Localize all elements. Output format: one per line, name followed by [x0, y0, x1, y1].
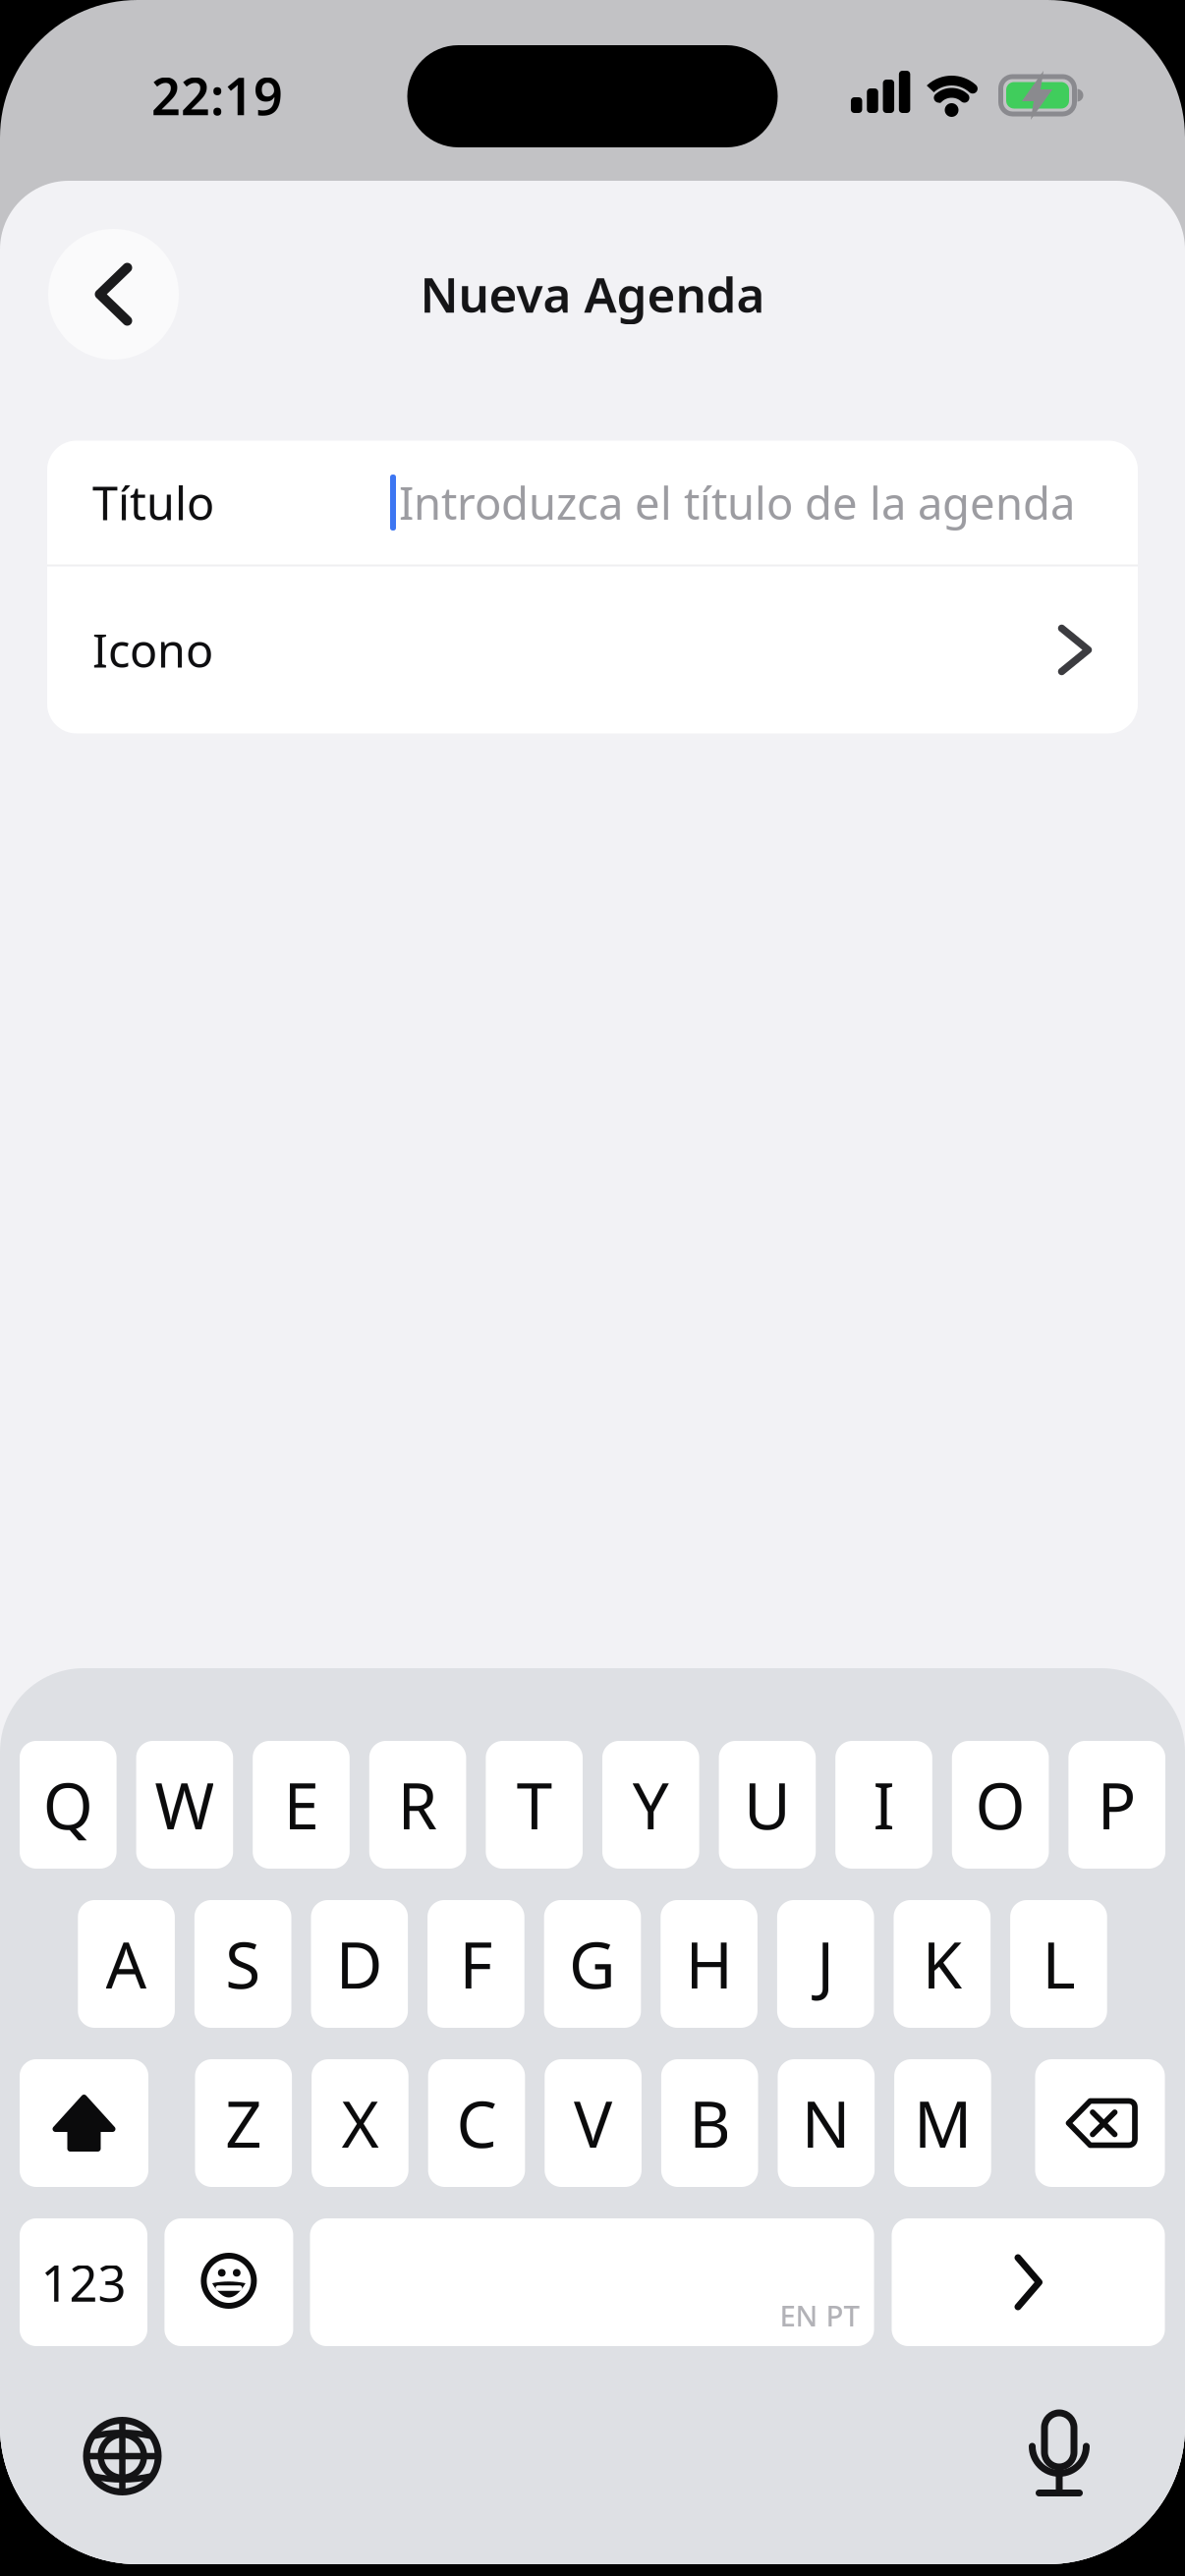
staticText: E — [283, 1762, 319, 1847]
button[interactable]: X — [312, 2059, 408, 2187]
staticText: U — [744, 1762, 791, 1847]
button[interactable]: Return — [892, 2218, 1165, 2346]
button[interactable]: Shift — [20, 2059, 148, 2187]
staticText: D — [336, 1921, 383, 2007]
button[interactable]: D — [311, 1900, 408, 2028]
button[interactable]: A — [78, 1900, 175, 2028]
staticText: Título — [92, 472, 214, 533]
staticText: G — [569, 1921, 616, 2007]
staticText: Y — [633, 1762, 669, 1847]
staticText: O — [975, 1762, 1025, 1847]
button[interactable]: Q — [20, 1741, 117, 1869]
button[interactable]: T — [486, 1741, 583, 1869]
button[interactable]: L — [1010, 1900, 1107, 2028]
button[interactable]: Numbers — [20, 2218, 147, 2346]
button[interactable]: Dictate — [1018, 2410, 1106, 2502]
staticText: M — [914, 2080, 972, 2166]
staticText: 22:19 — [151, 61, 283, 129]
staticText: C — [456, 2080, 497, 2166]
button[interactable]: Icono — [47, 566, 1138, 733]
staticText: A — [106, 1921, 147, 2007]
staticText: H — [685, 1921, 733, 2007]
staticText: N — [802, 2080, 851, 2166]
staticText: R — [398, 1762, 438, 1847]
button[interactable]: W — [136, 1741, 233, 1869]
button[interactable]: S — [194, 1900, 291, 2028]
button[interactable]: Z — [195, 2059, 292, 2187]
staticText: V — [574, 2080, 612, 2166]
button[interactable]: M — [894, 2059, 991, 2187]
button[interactable]: F — [428, 1900, 524, 2028]
staticText: EN PT — [780, 2296, 859, 2334]
staticText: L — [1042, 1921, 1075, 2007]
button[interactable]: Delete — [1035, 2059, 1165, 2187]
button[interactable]: J — [777, 1900, 874, 2028]
staticText: I — [873, 1762, 895, 1847]
staticText: Z — [225, 2080, 262, 2166]
staticText: 123 — [41, 2249, 126, 2315]
button[interactable]: H — [661, 1900, 757, 2028]
staticText: Icono — [92, 619, 213, 680]
button[interactable]: B — [661, 2059, 758, 2187]
button[interactable]: I — [835, 1741, 932, 1869]
staticText: Introduzca el título de la agenda — [399, 473, 1075, 532]
staticText: F — [459, 1921, 493, 2007]
staticText: Nueva Agenda — [420, 262, 765, 326]
button[interactable]: Back — [48, 229, 179, 360]
button[interactable]: Next keyboard — [79, 2413, 166, 2499]
staticText: W — [155, 1762, 215, 1847]
button[interactable]: G — [544, 1900, 641, 2028]
button[interactable]: N — [778, 2059, 875, 2187]
staticText: K — [922, 1921, 962, 2007]
staticText: X — [341, 2080, 379, 2166]
button[interactable]: Y — [602, 1741, 699, 1869]
button[interactable]: K — [894, 1900, 991, 2028]
button[interactable]: Space — [310, 2218, 874, 2346]
button[interactable]: E — [253, 1741, 350, 1869]
staticText: P — [1097, 1762, 1137, 1847]
staticText: B — [689, 2080, 730, 2166]
button[interactable]: Título — [47, 441, 1138, 564]
staticText: Q — [43, 1762, 93, 1847]
staticText: T — [517, 1762, 552, 1847]
button[interactable]: U — [719, 1741, 816, 1869]
button[interactable]: V — [545, 2059, 642, 2187]
button[interactable]: Emoji — [164, 2218, 293, 2346]
staticText: J — [817, 1921, 834, 2007]
button[interactable]: R — [369, 1741, 466, 1869]
button[interactable]: P — [1068, 1741, 1165, 1869]
button[interactable]: O — [952, 1741, 1049, 1869]
button[interactable]: C — [428, 2059, 525, 2187]
staticText: S — [225, 1921, 261, 2007]
